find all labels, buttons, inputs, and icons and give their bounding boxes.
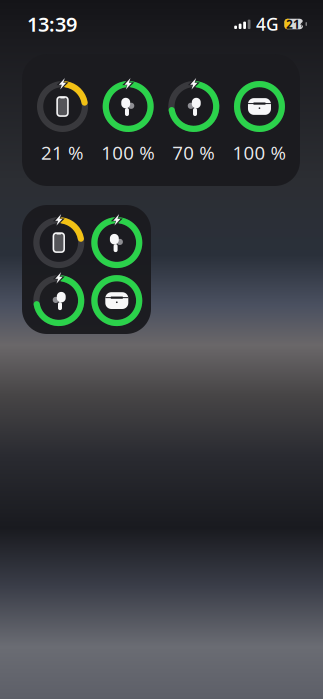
staticText: 21 — [286, 16, 300, 32]
staticText: 70 % — [172, 140, 215, 165]
staticText: 21 % — [41, 140, 84, 165]
staticText: 4G — [256, 12, 279, 35]
staticText: 100 % — [232, 140, 286, 165]
button[interactable] — [22, 205, 151, 334]
button[interactable]: 21 % — [22, 54, 300, 186]
staticText: 13:39 — [27, 11, 77, 37]
staticText: 100 % — [101, 140, 155, 165]
